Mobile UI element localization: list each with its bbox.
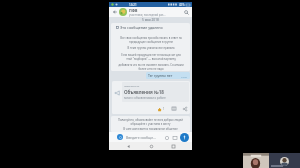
staticText: добавлять что вы не сможете заказать. Сс… bbox=[118, 63, 184, 70]
staticText: Объявления №18 bbox=[124, 89, 164, 95]
staticText: 42% bbox=[179, 3, 185, 7]
staticText: 5 мая 2018 bbox=[142, 18, 159, 22]
button[interactable]: Share bbox=[181, 105, 189, 113]
staticText: Тег группы нет bbox=[148, 73, 173, 78]
button[interactable]: Это сообщение удалено bbox=[111, 23, 190, 71]
staticText: ПФВ bbox=[129, 8, 138, 13]
staticText: 14:21 bbox=[129, 3, 137, 7]
staticText: Пожалуйста, обманывайте не всех добрых л… bbox=[116, 118, 185, 125]
staticText: В теме группы указаны все правила bbox=[118, 46, 184, 50]
staticText: участники, последний раз... bbox=[129, 13, 166, 17]
button[interactable]: переслано от bbox=[112, 81, 190, 114]
staticText: Все свои сообщения просьба писать в отве… bbox=[118, 36, 184, 43]
button[interactable]: Тег группы нет bbox=[146, 72, 190, 79]
button[interactable]: Back bbox=[112, 9, 118, 15]
staticText: Это сообщение удалено bbox=[120, 25, 163, 30]
staticText: В чате допускается нормальное общение bbox=[116, 127, 185, 130]
staticText: 14:21 bbox=[181, 75, 188, 78]
button[interactable]: Пожалуйста, обманывайте не всех добрых л… bbox=[111, 116, 190, 132]
button[interactable]: Attach bbox=[163, 134, 170, 141]
button[interactable]: Back bbox=[124, 142, 132, 150]
staticText: 1 bbox=[163, 107, 165, 111]
button[interactable]: Comment bbox=[170, 105, 178, 113]
button[interactable]: Search bbox=[182, 8, 191, 17]
button[interactable]: Recents bbox=[169, 142, 177, 150]
button[interactable]: Voice message bbox=[180, 133, 189, 142]
button[interactable]: Emoji bbox=[117, 134, 123, 140]
staticText: переслано от bbox=[124, 84, 140, 87]
button[interactable]: Camera bbox=[171, 134, 178, 141]
staticText: канал с объявлениями о работе bbox=[124, 96, 166, 100]
staticText: Введите сообще... bbox=[126, 135, 163, 140]
button[interactable]: Home bbox=[147, 142, 155, 150]
staticText: Если вашей продукции нет в помощи чат дл… bbox=[118, 53, 184, 60]
button[interactable]: Like bbox=[155, 105, 163, 113]
